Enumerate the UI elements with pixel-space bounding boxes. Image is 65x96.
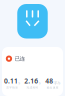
staticText: 0.11 xyxy=(4,77,18,85)
staticText: s xyxy=(18,80,20,85)
staticText: 完成耗时 xyxy=(26,86,38,89)
staticText: 48 xyxy=(45,77,53,85)
staticText: 输出速度 xyxy=(47,86,59,89)
staticText: 已连 xyxy=(15,55,25,62)
button[interactable]: 已连 xyxy=(2,55,63,62)
staticText: 2.16 xyxy=(24,77,38,85)
staticText: 字/s xyxy=(53,80,60,85)
staticText: 首字响应 xyxy=(6,86,18,89)
staticText: s xyxy=(39,80,41,85)
